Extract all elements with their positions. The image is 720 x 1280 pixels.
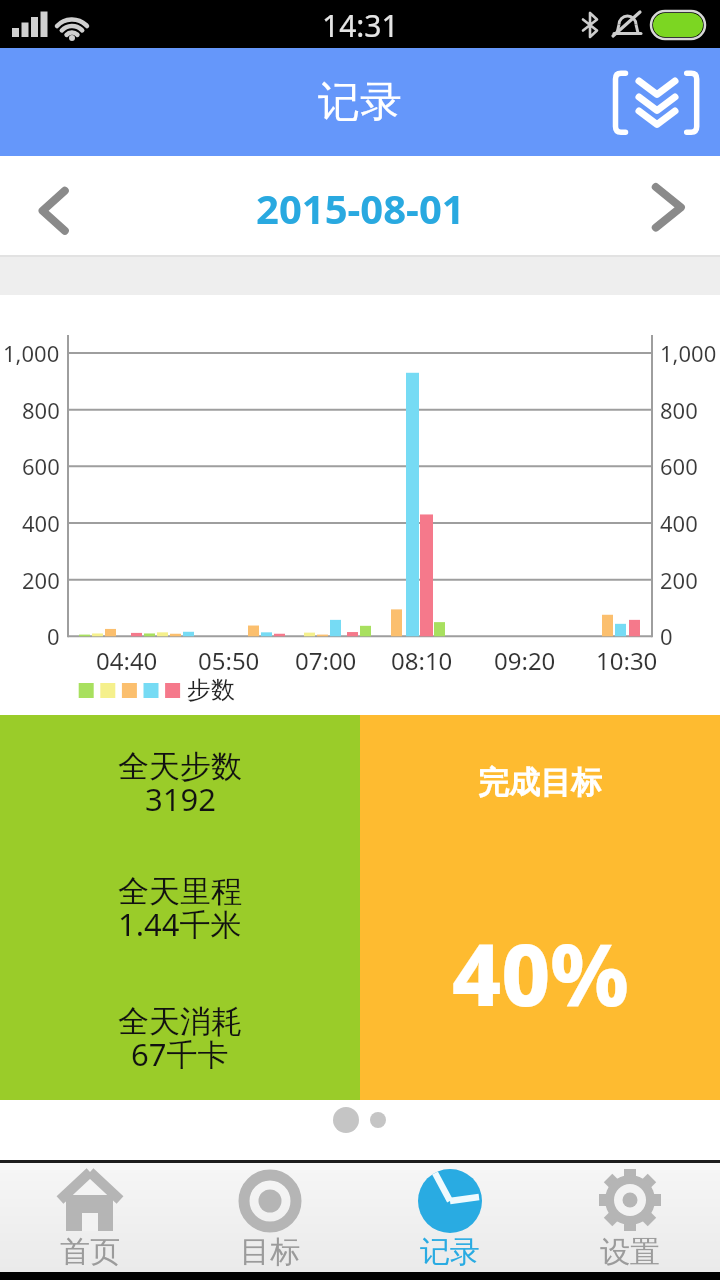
- staticText: 1,000: [660, 338, 717, 368]
- staticText: 600: [22, 451, 60, 481]
- staticText: 200: [660, 565, 698, 595]
- button[interactable]: [602, 58, 706, 138]
- staticText: 目标: [240, 1233, 300, 1271]
- button[interactable]: 全天步数: [0, 715, 360, 1100]
- staticText: 0: [47, 621, 60, 651]
- staticText: 800: [660, 395, 698, 425]
- button[interactable]: [30, 178, 78, 238]
- staticText: 09:20: [494, 644, 556, 677]
- staticText: 首页: [60, 1233, 120, 1271]
- staticText: 1,000: [3, 338, 60, 368]
- button[interactable]: 设置: [540, 1163, 720, 1275]
- staticText: 1.44千米: [118, 903, 242, 939]
- staticText: 步数: [187, 675, 235, 705]
- button[interactable]: 首页: [0, 1163, 180, 1275]
- staticText: 400: [22, 508, 60, 538]
- staticText: 完成目标: [478, 763, 602, 799]
- staticText: 0: [660, 621, 673, 651]
- staticText: 设置: [600, 1233, 660, 1271]
- staticText: 14:31: [322, 5, 399, 45]
- staticText: 10:30: [596, 644, 658, 677]
- staticText: 全天里程: [118, 872, 242, 908]
- button[interactable]: [640, 178, 688, 238]
- staticText: 07:00: [295, 644, 357, 677]
- staticText: 800: [22, 395, 60, 425]
- staticText: 04:40: [96, 644, 158, 677]
- staticText: 08:10: [391, 644, 453, 677]
- staticText: 全天步数: [118, 747, 242, 783]
- staticText: 记录: [420, 1233, 480, 1271]
- button[interactable]: 目标: [180, 1163, 360, 1275]
- button[interactable]: 完成目标: [360, 715, 720, 1100]
- staticText: 记录: [318, 76, 402, 129]
- staticText: 2015-08-01: [256, 181, 465, 235]
- staticText: 200: [22, 565, 60, 595]
- staticText: 05:50: [198, 644, 260, 677]
- staticText: 40%: [452, 915, 629, 1023]
- staticText: 全天消耗: [118, 1002, 242, 1038]
- staticText: 3192: [145, 778, 216, 814]
- staticText: 67千卡: [131, 1033, 229, 1069]
- button[interactable]: 记录: [360, 1163, 540, 1275]
- staticText: 400: [660, 508, 698, 538]
- staticText: 600: [660, 451, 698, 481]
